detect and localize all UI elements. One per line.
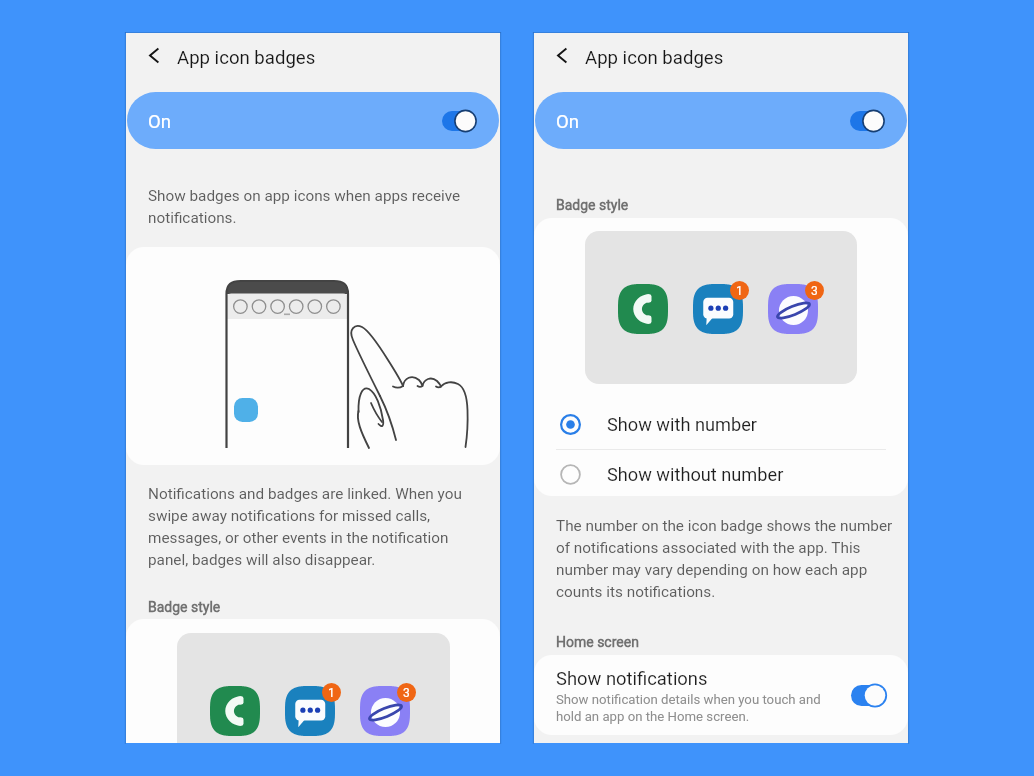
staticText: 3 — [811, 284, 818, 298]
staticText: Show badges on app icons when apps recei… — [148, 187, 468, 227]
staticText: Show notifications — [556, 668, 708, 690]
staticText: 1 — [328, 686, 335, 700]
staticText: On — [556, 111, 579, 133]
staticText: Badge style — [556, 197, 629, 213]
button[interactable]: Show notifications — [534, 655, 908, 735]
staticText: On — [148, 111, 171, 133]
button[interactable]: Show without number — [534, 449, 908, 496]
staticText: Show notification details when you touch… — [556, 692, 836, 724]
button[interactable]: Navigate up — [540, 33, 584, 77]
staticText: Show without number — [607, 464, 784, 485]
button[interactable]: Navigate up — [132, 33, 176, 77]
staticText: Notifications and badges are linked. Whe… — [148, 485, 468, 569]
button[interactable]: Show with number — [534, 399, 908, 449]
staticText: Show with number — [607, 414, 757, 435]
staticText: App icon badges — [585, 47, 724, 69]
staticText: 3 — [403, 686, 410, 700]
button[interactable]: On — [535, 92, 907, 149]
staticText: Badge style — [148, 599, 221, 615]
staticText: The number on the icon badge shows the n… — [556, 517, 904, 601]
button[interactable]: On — [127, 92, 499, 149]
staticText: 1 — [736, 284, 743, 298]
staticText: App icon badges — [177, 47, 316, 69]
staticText: Home screen — [556, 634, 639, 650]
